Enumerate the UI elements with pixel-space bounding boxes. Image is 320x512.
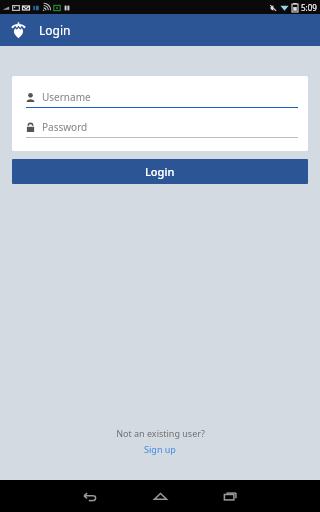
staticText: Password: [42, 120, 88, 134]
staticText: Sign up: [144, 443, 176, 455]
staticText: 5:09: [301, 2, 317, 13]
button[interactable]: Sign up: [138, 442, 182, 456]
staticText: Login: [145, 164, 175, 179]
button[interactable]: Back: [55, 480, 125, 512]
button[interactable]: App logo: [8, 20, 28, 40]
button[interactable]: Home: [125, 480, 195, 512]
button[interactable]: Login: [12, 159, 308, 184]
staticText: Not an existing user?: [116, 427, 205, 439]
staticText: Login: [39, 22, 71, 38]
button[interactable]: Username: [26, 89, 298, 108]
staticText: Username: [42, 90, 91, 104]
button[interactable]: Recent apps: [195, 480, 265, 512]
button[interactable]: Password: [26, 119, 298, 138]
